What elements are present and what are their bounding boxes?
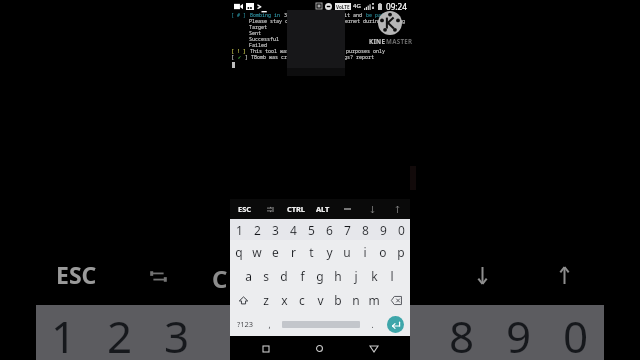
staticText: VoLTE bbox=[336, 4, 350, 10]
staticText: 3 bbox=[164, 306, 190, 360]
staticText: , bbox=[268, 319, 271, 330]
staticText: Bombing in bbox=[250, 12, 284, 18]
staticText: 0 bbox=[563, 306, 589, 360]
button[interactable]: y bbox=[320, 240, 338, 264]
button[interactable]: l bbox=[383, 264, 401, 288]
staticText: Successful : 0 bbox=[231, 36, 307, 42]
staticText: 4G bbox=[353, 2, 361, 10]
button[interactable]: r bbox=[284, 240, 302, 264]
button[interactable]: Enter bbox=[380, 312, 410, 336]
button[interactable]: Tab bbox=[258, 199, 281, 219]
staticText: b bbox=[334, 292, 342, 308]
staticText: 0 bbox=[398, 222, 405, 238]
staticText: 3 bbox=[272, 222, 279, 238]
staticText: 2 bbox=[107, 306, 133, 360]
staticText: ALT bbox=[316, 204, 330, 214]
button[interactable]: Arrow up bbox=[385, 199, 410, 219]
button[interactable]: ALT bbox=[310, 199, 335, 219]
button[interactable]: n bbox=[347, 288, 365, 312]
button[interactable]: Shift bbox=[230, 288, 257, 312]
button[interactable]: i bbox=[356, 240, 374, 264]
button[interactable]: Home bbox=[306, 337, 332, 360]
button[interactable]: k bbox=[365, 264, 383, 288]
button[interactable]: o bbox=[374, 240, 392, 264]
button[interactable]: s bbox=[257, 264, 275, 288]
button[interactable]: h bbox=[329, 264, 347, 288]
staticText: 4 bbox=[290, 222, 297, 238]
button[interactable]: , bbox=[261, 312, 277, 336]
button[interactable]: u bbox=[338, 240, 356, 264]
staticText: l bbox=[390, 268, 394, 284]
staticText: q bbox=[235, 244, 243, 260]
staticText: o bbox=[379, 244, 387, 260]
button[interactable]: Recents bbox=[253, 337, 279, 360]
staticText: d bbox=[280, 268, 288, 284]
button[interactable]: p bbox=[392, 240, 410, 264]
button[interactable]: Backspace bbox=[383, 288, 410, 312]
staticText: ] TBomb was created by SpeedX, bugs? rep… bbox=[242, 54, 375, 60]
staticText: i bbox=[363, 244, 367, 260]
button[interactable]: 3 bbox=[266, 219, 284, 240]
button[interactable]: 4 bbox=[284, 219, 302, 240]
staticText: 9 bbox=[380, 222, 387, 238]
button[interactable]: j bbox=[347, 264, 365, 288]
staticText: u bbox=[343, 244, 351, 260]
button[interactable]: t bbox=[302, 240, 320, 264]
button[interactable]: 8 bbox=[356, 219, 374, 240]
button[interactable]: d bbox=[275, 264, 293, 288]
staticText: This tool was made for research purposes… bbox=[250, 48, 386, 54]
staticText: v bbox=[317, 292, 324, 308]
staticText: KINE bbox=[369, 37, 386, 45]
staticText: Please stay connected to the internet du… bbox=[231, 18, 406, 24]
staticText: 8 bbox=[362, 222, 369, 238]
staticText: a bbox=[245, 268, 252, 284]
staticText: 1 bbox=[236, 222, 243, 238]
staticText: [ ! ] bbox=[231, 48, 250, 54]
staticText: 3 seconds, kindly wait and bbox=[284, 12, 366, 18]
button[interactable]: b bbox=[329, 288, 347, 312]
button[interactable]: Space bbox=[277, 312, 364, 336]
button[interactable]: ?123 bbox=[230, 312, 261, 336]
staticText: j bbox=[354, 268, 358, 284]
button[interactable]: 7 bbox=[338, 219, 356, 240]
button[interactable]: . bbox=[364, 312, 380, 336]
button[interactable]: 2 bbox=[248, 219, 266, 240]
button[interactable]: a bbox=[239, 264, 257, 288]
staticText: n bbox=[352, 292, 360, 308]
staticText: ESC bbox=[238, 204, 251, 214]
button[interactable]: 9 bbox=[374, 219, 392, 240]
staticText: w bbox=[252, 244, 262, 260]
staticText: ?123 bbox=[237, 319, 254, 329]
button[interactable]: ESC bbox=[230, 199, 258, 219]
button[interactable]: e bbox=[266, 240, 284, 264]
button[interactable]: c bbox=[293, 288, 311, 312]
staticText: s bbox=[263, 268, 269, 284]
staticText: [ bbox=[231, 54, 238, 60]
button[interactable]: 0 bbox=[392, 219, 410, 240]
staticText: 9 bbox=[506, 306, 532, 360]
button[interactable]: 1 bbox=[230, 219, 248, 240]
button[interactable]: f bbox=[293, 264, 311, 288]
button[interactable]: 5 bbox=[302, 219, 320, 240]
staticText: [ # ] bbox=[231, 12, 250, 18]
button[interactable]: Back bbox=[361, 337, 387, 360]
staticText: m bbox=[368, 292, 380, 308]
button[interactable]: 6 bbox=[320, 219, 338, 240]
staticText: 2 bbox=[254, 222, 261, 238]
button[interactable]: Minus bbox=[335, 199, 360, 219]
button[interactable]: x bbox=[275, 288, 293, 312]
button[interactable]: z bbox=[257, 288, 275, 312]
staticText: Sent : 0 bbox=[231, 30, 307, 36]
staticText: 5 bbox=[308, 222, 315, 238]
button[interactable]: g bbox=[311, 264, 329, 288]
button[interactable]: q bbox=[230, 240, 248, 264]
staticText: C bbox=[212, 262, 228, 295]
staticText: MASTER bbox=[386, 37, 413, 45]
button[interactable]: CTRL bbox=[281, 199, 310, 219]
button[interactable]: Arrow down bbox=[360, 199, 385, 219]
button[interactable]: m bbox=[365, 288, 383, 312]
button[interactable]: w bbox=[248, 240, 266, 264]
staticText: 8 bbox=[449, 306, 475, 360]
staticText: ✓ bbox=[238, 54, 242, 60]
button[interactable]: v bbox=[311, 288, 329, 312]
